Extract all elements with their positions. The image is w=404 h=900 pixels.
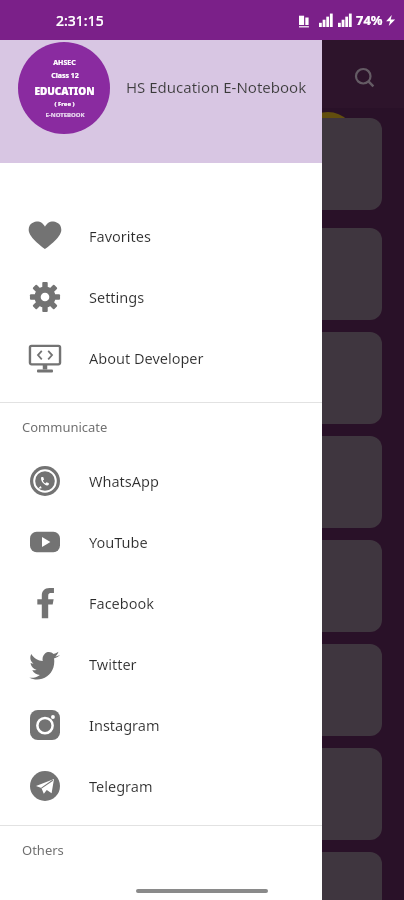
staticText: Settings — [89, 287, 145, 307]
staticText: ( Free ) — [54, 100, 75, 108]
staticText: 2:31:15 — [56, 11, 104, 30]
button[interactable]: Twitter — [0, 633, 322, 694]
staticText: Facebook — [89, 593, 155, 613]
staticText: AHSEC — [53, 58, 76, 68]
staticText: E-NOTEBOOK — [45, 111, 85, 119]
staticText: Communicate — [22, 418, 108, 436]
button[interactable] — [22, 436, 382, 528]
button[interactable]: AHSEC — [0, 0, 322, 163]
button[interactable]: Facebook — [0, 572, 322, 633]
button[interactable] — [22, 228, 382, 320]
button[interactable]: YouTube — [0, 511, 322, 572]
button[interactable]: Favorites — [0, 173, 322, 266]
button[interactable] — [22, 644, 382, 736]
button[interactable]: About Developer — [0, 327, 322, 388]
button[interactable] — [22, 540, 382, 632]
staticText: Favorites — [89, 226, 151, 246]
button[interactable]: Telegram — [0, 755, 322, 816]
button[interactable]: Settings — [0, 266, 322, 327]
staticText: WhatsApp — [89, 471, 159, 491]
staticText: Class 12 — [51, 71, 79, 81]
button[interactable] — [22, 118, 382, 210]
button[interactable]: WhatsApp — [0, 450, 322, 511]
staticText: Twitter — [89, 654, 137, 674]
staticText: YouTube — [89, 532, 148, 552]
staticText: Telegram — [89, 776, 153, 796]
staticText: About Developer — [89, 348, 204, 368]
button[interactable] — [22, 748, 382, 840]
button[interactable] — [22, 852, 382, 900]
staticText: 74% — [356, 11, 383, 29]
staticText: Instagram — [89, 715, 160, 735]
staticText: Others — [22, 841, 64, 859]
button[interactable] — [22, 332, 382, 424]
button[interactable]: Instagram — [0, 694, 322, 755]
staticText: EDUCATION — [34, 84, 95, 98]
staticText: HS Education E-Notebook — [126, 77, 326, 97]
button[interactable]: Search — [347, 60, 383, 96]
